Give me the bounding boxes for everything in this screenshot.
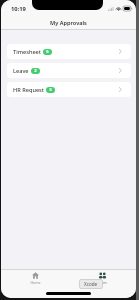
button[interactable]: HR Request [7,82,131,97]
staticText: HR Request [13,86,44,94]
staticText: 2 [34,68,37,74]
button[interactable]: Leave [7,63,131,78]
staticText: 10:19 [11,5,26,13]
staticText: My Approvals [50,19,87,27]
staticText: Team [97,280,107,285]
button[interactable]: Team [82,272,122,285]
staticText: Xcode [84,281,98,287]
staticText: 3 [49,87,52,93]
button[interactable]: Timesheet [7,44,131,59]
staticText: Timesheet [13,48,41,56]
staticText: Leave [13,67,29,75]
staticText: Home [30,280,41,285]
button[interactable]: Home [15,272,55,285]
staticText: 5 [46,49,49,55]
